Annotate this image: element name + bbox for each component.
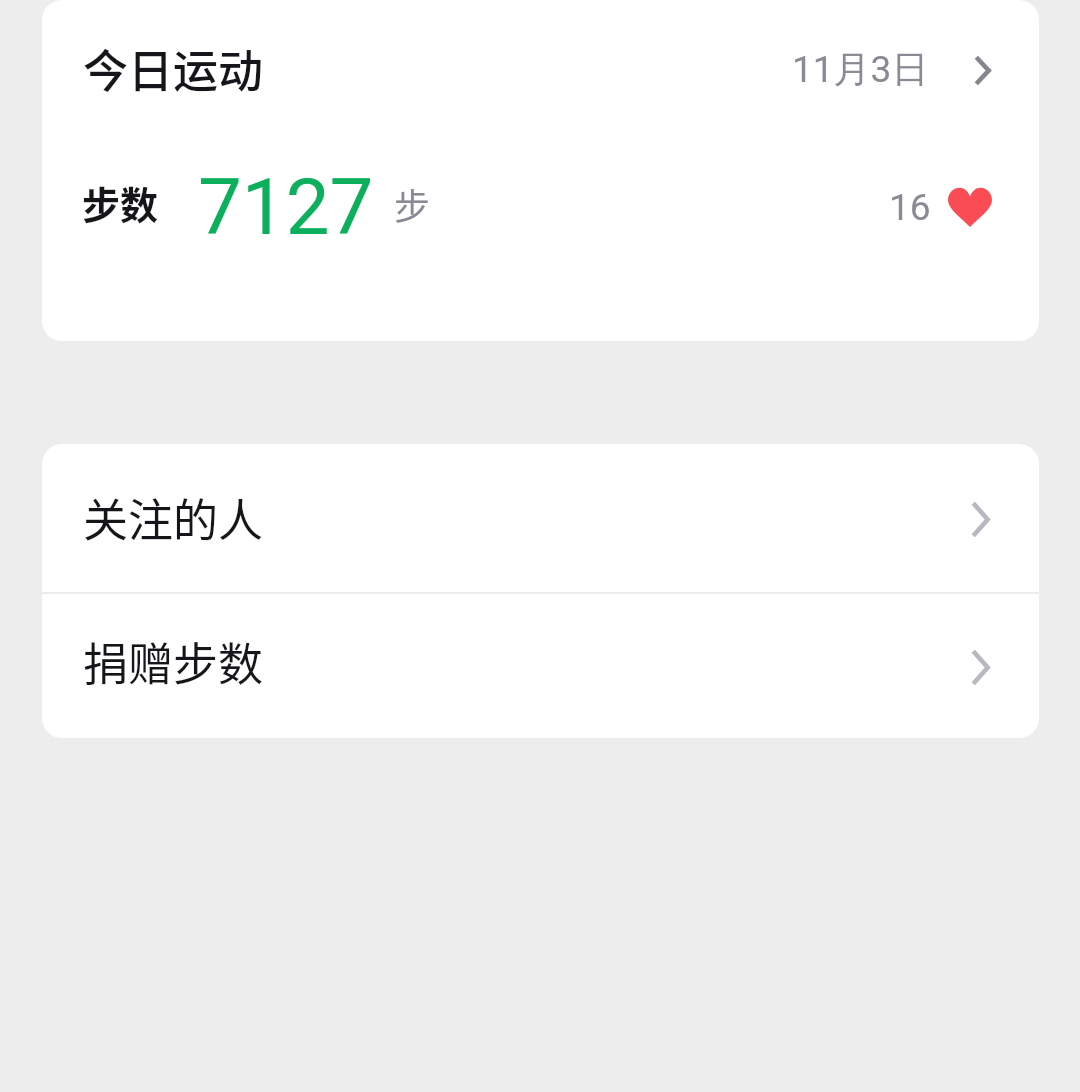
button[interactable]: 16 likes	[862, 150, 1039, 250]
staticText: 16	[889, 186, 931, 229]
staticText: 今日运动	[83, 36, 264, 101]
staticText: 捐赠步数	[83, 629, 264, 694]
button[interactable]: 今日运动	[42, 0, 1039, 140]
staticText: 7127	[198, 162, 374, 253]
button[interactable]: 捐赠步数	[42, 594, 1039, 738]
staticText: 步	[394, 178, 431, 230]
staticText: 关注的人	[83, 485, 264, 550]
staticText: 步数	[82, 175, 159, 230]
staticText: 11月3日	[792, 46, 929, 93]
button[interactable]: 关注的人	[42, 444, 1039, 592]
